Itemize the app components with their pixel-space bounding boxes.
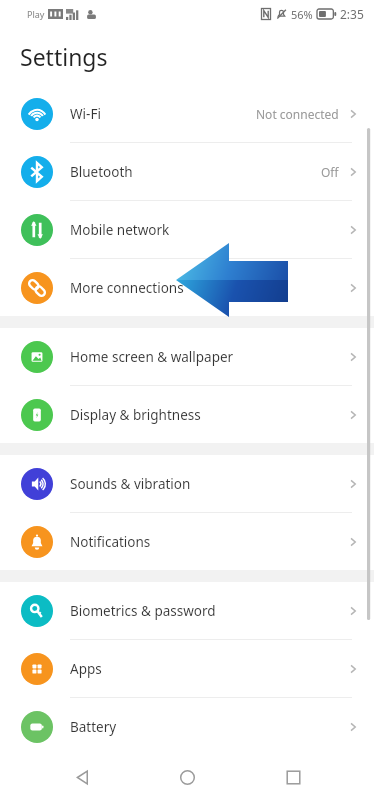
button[interactable]: Storage: [0, 756, 374, 800]
staticText: Biometrics & password: [70, 602, 346, 620]
button[interactable]: Bluetooth: [0, 143, 374, 200]
button[interactable]: Home screen & wallpaper: [0, 328, 374, 385]
staticText: Not connected: [256, 106, 339, 122]
staticText: Play: [27, 8, 45, 20]
button[interactable]: Apps: [0, 640, 374, 697]
staticText: Home screen & wallpaper: [70, 348, 346, 366]
button[interactable]: More connections: [0, 259, 374, 316]
staticText: Off: [321, 164, 339, 180]
staticText: Battery: [70, 718, 346, 736]
button[interactable]: Battery: [0, 698, 374, 755]
button[interactable]: Display & brightness: [0, 386, 374, 443]
button[interactable]: Home: [163, 754, 211, 800]
button[interactable]: Sounds & vibration: [0, 455, 374, 512]
button[interactable]: Wi-Fi: [0, 85, 374, 142]
staticText: Storage: [70, 769, 346, 787]
staticText: Sounds & vibration: [70, 475, 346, 493]
staticText: Display & brightness: [70, 406, 346, 424]
button[interactable]: Mobile network: [0, 201, 374, 258]
button[interactable]: Back: [58, 754, 106, 800]
staticText: Notifications: [70, 533, 346, 551]
staticText: Wi-Fi: [70, 105, 256, 123]
staticText: 56%: [291, 7, 313, 22]
staticText: Settings: [20, 41, 108, 72]
staticText: Apps: [70, 660, 346, 678]
button[interactable]: Notifications: [0, 513, 374, 570]
staticText: Bluetooth: [70, 163, 321, 181]
button[interactable]: Biometrics & password: [0, 582, 374, 639]
button[interactable]: Recent apps: [269, 754, 317, 800]
staticText: Mobile network: [70, 221, 346, 239]
staticText: More connections: [70, 279, 346, 297]
staticText: 2:35: [340, 6, 364, 22]
